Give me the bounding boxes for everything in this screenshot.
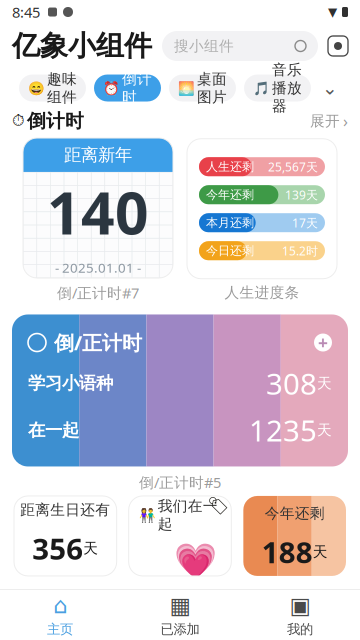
staticText: 倒计时	[27, 109, 84, 132]
button[interactable]: ⏰	[94, 74, 161, 101]
button[interactable]: ⌂	[0, 590, 120, 640]
staticText: 距离新年	[64, 144, 132, 166]
staticText: 搜小组件	[174, 37, 234, 55]
staticText: 天	[317, 421, 332, 439]
staticText: ▼	[328, 5, 337, 19]
staticText: 356	[32, 529, 83, 568]
staticText: 天	[317, 374, 332, 392]
staticText: 亿象小组件	[12, 29, 152, 63]
staticText: 人生还剩	[206, 159, 254, 174]
staticText: 25,567天	[268, 159, 318, 175]
staticText: 倒计时	[122, 70, 152, 106]
staticText: 今日还剩	[206, 243, 254, 258]
button[interactable]: 搜小组件	[162, 31, 318, 61]
staticText: 🌅	[178, 80, 195, 96]
staticText: 本月还剩	[206, 215, 254, 230]
staticText: ›	[343, 110, 348, 132]
staticText: 188	[262, 532, 313, 571]
button[interactable]: 展开	[310, 110, 348, 132]
button[interactable]: 距离生日还有	[14, 496, 117, 576]
staticText: 140	[47, 173, 149, 251]
staticText: 今年还剩	[206, 187, 254, 202]
staticText: 17天	[292, 215, 318, 231]
button[interactable]: 🌅	[169, 74, 236, 101]
staticText: 我们在一起	[158, 497, 218, 533]
staticText: 今年还剩	[265, 504, 325, 522]
staticText: +	[318, 331, 328, 354]
staticText: ⏰	[103, 80, 120, 96]
staticText: ⌂	[53, 592, 67, 618]
button[interactable]: 设置	[328, 36, 348, 56]
staticText: ⌄	[322, 77, 338, 99]
button[interactable]: 🎵	[244, 74, 311, 101]
button[interactable]: ▣	[240, 590, 360, 640]
staticText: 桌面图片	[197, 70, 227, 106]
staticText: 倒/正计时	[54, 329, 142, 356]
button[interactable]: 距离新年	[23, 138, 173, 278]
button[interactable]: ▦	[120, 590, 240, 640]
staticText: 倒/正计时#5	[139, 472, 221, 492]
staticText: 🎵	[253, 80, 270, 96]
staticText: 139天	[285, 187, 318, 203]
staticText: 趣味组件	[47, 70, 77, 106]
staticText: 音乐播放器	[272, 61, 302, 115]
staticText: 😄	[28, 80, 45, 96]
button[interactable]: 😄	[19, 74, 86, 101]
staticText: 15.2时	[282, 243, 318, 259]
staticText: 💗	[174, 541, 217, 581]
staticText: 展开	[310, 112, 340, 130]
staticText: ▣	[289, 592, 310, 618]
staticText: 学习小语种	[28, 373, 113, 394]
button[interactable]: 今年还剩	[243, 496, 346, 576]
staticText: 已添加	[160, 621, 199, 638]
staticText: 🏷	[207, 496, 229, 516]
staticText: 距离生日还有	[20, 501, 110, 519]
staticText: 倒/正计时#7	[57, 283, 139, 302]
staticText: ▦	[169, 592, 190, 618]
staticText: - 2025.01.01 -	[55, 259, 141, 276]
staticText: 👫	[139, 507, 156, 523]
staticText: 主页	[47, 621, 73, 638]
staticText: 天	[83, 539, 98, 557]
staticText: 天	[313, 543, 328, 561]
staticText: 在一起	[28, 420, 79, 441]
button[interactable]: 倒/正计时	[0, 302, 360, 466]
staticText: 308	[266, 364, 317, 403]
button[interactable]: 更多分类	[319, 73, 341, 103]
staticText: 我的	[287, 621, 313, 638]
staticText: 人生进度条	[224, 284, 299, 302]
staticText: 8:45	[12, 2, 40, 22]
staticText: ⏱	[12, 113, 24, 129]
staticText: 1235	[249, 411, 317, 450]
button[interactable]: 👫	[129, 496, 231, 576]
button[interactable]: 人生还剩	[187, 139, 337, 279]
